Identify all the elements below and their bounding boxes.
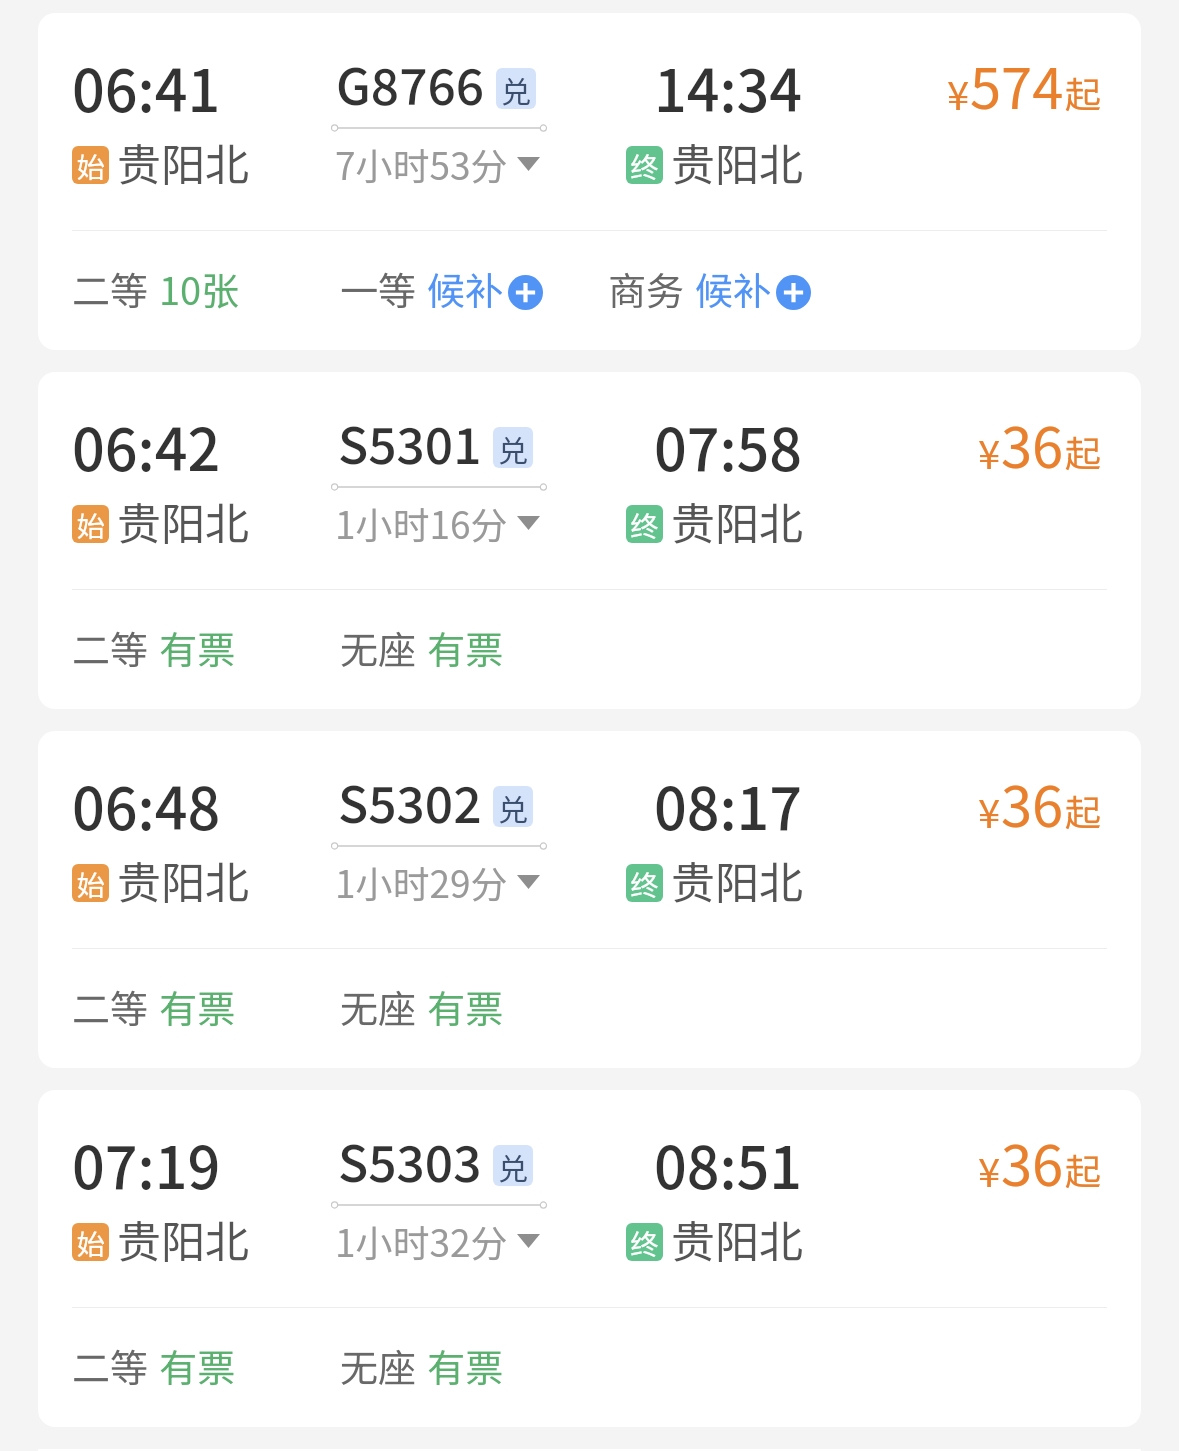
- staticText: 有票: [427, 620, 504, 675]
- button[interactable]: 一等: [340, 261, 608, 316]
- staticText: 起: [1065, 784, 1102, 836]
- staticText: ¥: [947, 64, 970, 122]
- button[interactable]: 商务: [608, 261, 876, 316]
- staticText: 二等: [72, 1338, 149, 1393]
- staticText: ¥: [978, 423, 1001, 481]
- staticText: 06:42: [72, 404, 221, 487]
- staticText: 1小时16分: [335, 496, 508, 550]
- staticText: 36: [1001, 1121, 1064, 1202]
- staticText: ¥: [978, 1141, 1001, 1199]
- staticText: 商务: [608, 261, 685, 316]
- button[interactable]: 06:41: [38, 13, 1141, 350]
- staticText: 二等: [72, 979, 149, 1034]
- staticText: 36: [1001, 403, 1064, 484]
- staticText: 贵阳北: [671, 848, 803, 912]
- staticText: 兑: [498, 427, 528, 468]
- other: 候补: [508, 275, 543, 310]
- button[interactable]: 06:42: [38, 372, 1141, 709]
- staticText: 始: [76, 864, 105, 902]
- staticText: 贵阳北: [671, 130, 803, 194]
- staticText: 无座: [340, 1338, 417, 1393]
- staticText: S5301: [338, 406, 482, 478]
- other: 候补: [776, 275, 811, 310]
- staticText: 贵阳北: [117, 130, 249, 194]
- staticText: 一等: [340, 261, 417, 316]
- staticText: 无座: [340, 979, 417, 1034]
- staticText: 兑: [501, 68, 531, 109]
- staticText: 574: [970, 44, 1064, 125]
- staticText: 有票: [427, 1338, 504, 1393]
- staticText: S5303: [338, 1124, 482, 1196]
- staticText: 07:19: [72, 1122, 221, 1205]
- staticText: 贵阳北: [671, 489, 803, 553]
- button[interactable]: 无座: [340, 620, 608, 675]
- staticText: 起: [1065, 66, 1102, 118]
- staticText: 08:17: [626, 763, 830, 846]
- staticText: 贵阳北: [117, 489, 249, 553]
- button[interactable]: 无座: [340, 1338, 608, 1393]
- staticText: 14:34: [626, 45, 830, 128]
- staticText: 终: [630, 1223, 659, 1261]
- staticText: 06:41: [72, 45, 221, 128]
- staticText: 10张: [159, 261, 240, 316]
- staticText: 7小时53分: [335, 137, 508, 191]
- staticText: S5302: [338, 765, 482, 837]
- staticText: 1小时32分: [335, 1214, 508, 1268]
- staticText: 终: [630, 505, 659, 543]
- staticText: 贵阳北: [117, 848, 249, 912]
- staticText: 有票: [159, 1338, 236, 1393]
- staticText: 候补: [427, 261, 504, 316]
- staticText: 始: [76, 505, 105, 543]
- staticText: 起: [1065, 425, 1102, 477]
- staticText: 终: [630, 146, 659, 184]
- staticText: 二等: [72, 620, 149, 675]
- staticText: 有票: [159, 979, 236, 1034]
- staticText: 始: [76, 146, 105, 184]
- staticText: 36: [1001, 762, 1064, 843]
- staticText: 兑: [498, 1145, 528, 1186]
- staticText: ¥: [978, 782, 1001, 840]
- button[interactable]: 二等: [72, 979, 340, 1034]
- staticText: 1小时29分: [335, 855, 508, 909]
- button[interactable]: 06:48: [38, 731, 1141, 1068]
- staticText: 始: [76, 1223, 105, 1261]
- staticText: 起: [1065, 1143, 1102, 1195]
- staticText: 贵阳北: [671, 1207, 803, 1271]
- button[interactable]: 二等: [72, 1338, 340, 1393]
- staticText: 有票: [427, 979, 504, 1034]
- button[interactable]: 无座: [340, 979, 608, 1034]
- button[interactable]: 二等: [72, 261, 340, 316]
- staticText: 08:51: [626, 1122, 830, 1205]
- staticText: 终: [630, 864, 659, 902]
- staticText: 无座: [340, 620, 417, 675]
- staticText: 候补: [695, 261, 772, 316]
- staticText: 贵阳北: [117, 1207, 249, 1271]
- staticText: 06:48: [72, 763, 221, 846]
- staticText: 有票: [159, 620, 236, 675]
- button[interactable]: 07:19: [38, 1090, 1141, 1427]
- staticText: G8766: [336, 47, 485, 119]
- staticText: 07:58: [626, 404, 830, 487]
- staticText: 兑: [498, 786, 528, 827]
- staticText: 二等: [72, 261, 149, 316]
- button[interactable]: 二等: [72, 620, 340, 675]
